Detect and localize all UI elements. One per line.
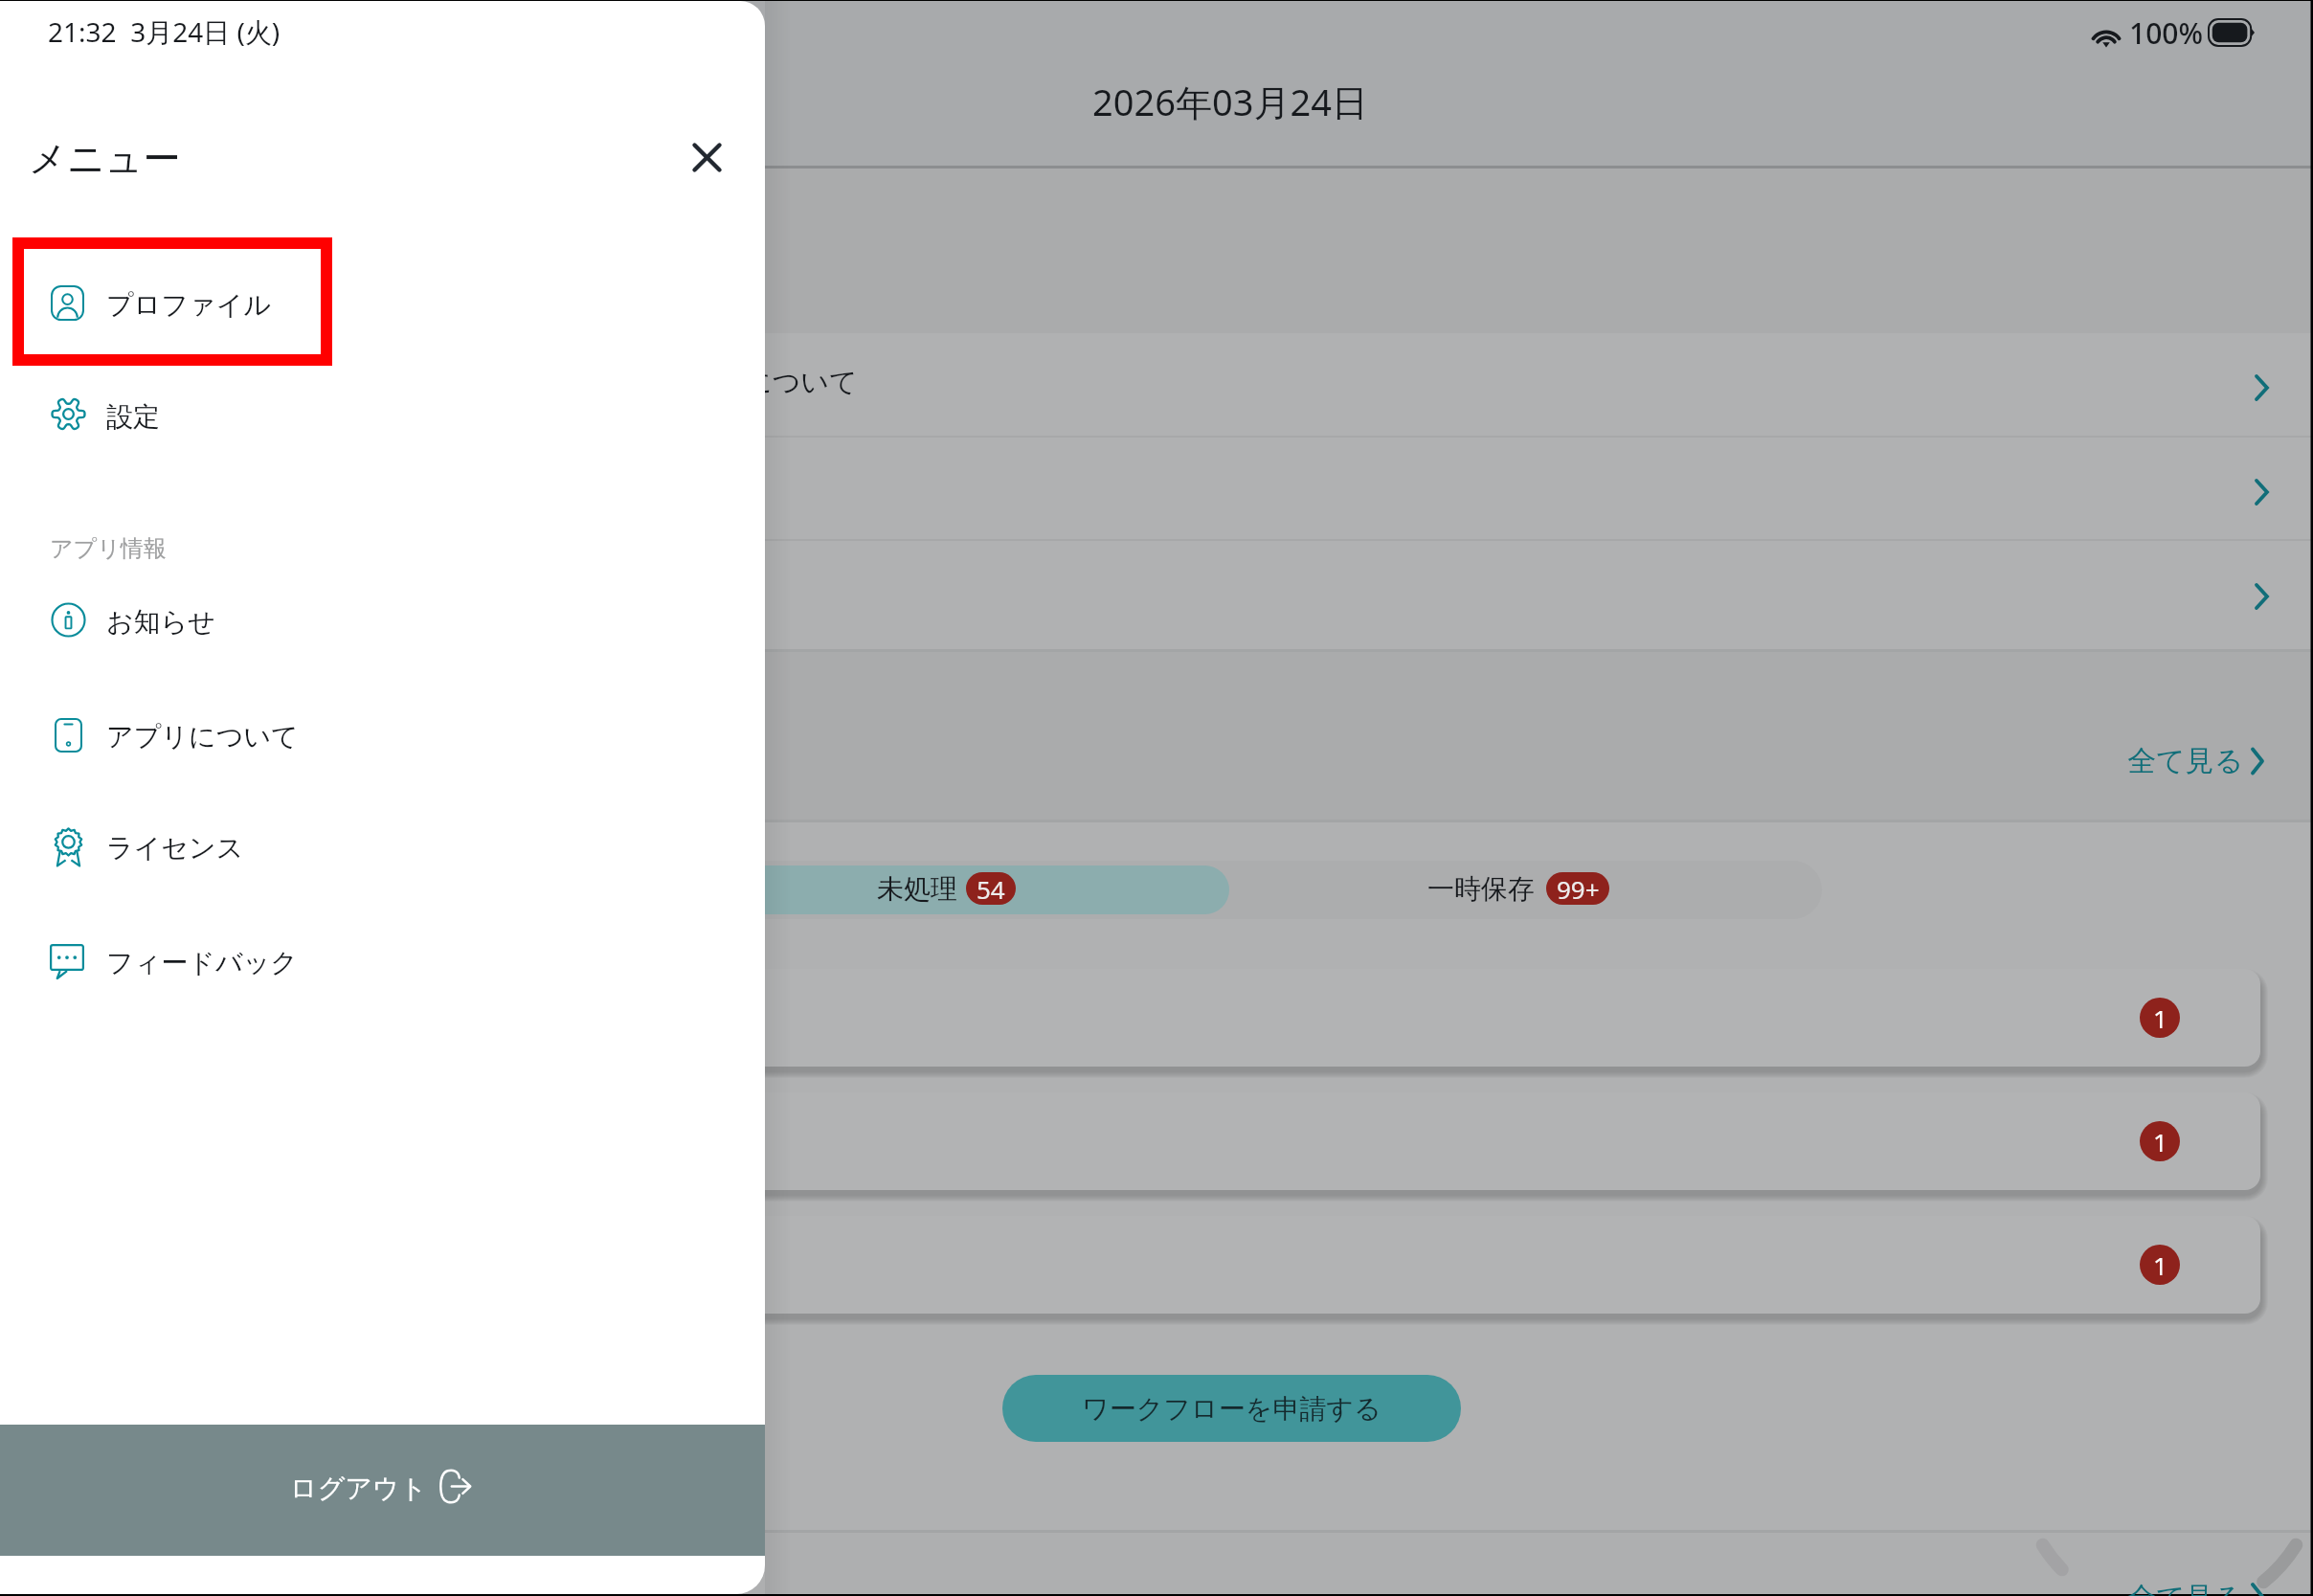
staticText: 99+ xyxy=(1557,872,1600,905)
button[interactable]: アプリについて xyxy=(0,679,765,790)
button[interactable]: 設定 xyxy=(0,359,765,470)
staticText: 設定 xyxy=(106,400,160,434)
staticText: お知らせ xyxy=(106,605,215,639)
staticText: 全て見る xyxy=(2127,1580,2244,1596)
staticText: 2026年03月24日 xyxy=(1092,77,1368,126)
staticText: 一時保存 xyxy=(1427,872,1535,906)
staticText: ログアウト xyxy=(290,1472,428,1505)
button[interactable]: ライセンス xyxy=(0,790,765,901)
staticText: 未処理 xyxy=(877,872,957,906)
button[interactable]: 全て見る xyxy=(2106,726,2271,797)
button[interactable]: プロファイル xyxy=(0,247,765,358)
button[interactable]: Close menu xyxy=(677,127,737,188)
button[interactable]: お知らせ xyxy=(0,564,765,675)
staticText: ライセンス xyxy=(106,831,244,865)
button[interactable]: ログアウト xyxy=(0,1425,765,1556)
button[interactable]: フィードバック xyxy=(0,905,765,1016)
staticText: アプリについて xyxy=(106,720,299,753)
staticText: 21:32 3月24日 (火) xyxy=(48,13,281,50)
staticText: 1 xyxy=(2153,1248,2167,1282)
button[interactable]: 全て見る xyxy=(2106,1562,2271,1596)
staticText: ワークフローを申請する xyxy=(1082,1392,1381,1426)
staticText: 1 xyxy=(2153,1001,2167,1035)
staticText: 全て見る xyxy=(2127,743,2244,779)
staticText: 1 xyxy=(2153,1125,2167,1158)
staticText: 54 xyxy=(977,872,1005,905)
staticText: フィードバック xyxy=(106,946,298,979)
staticText: 100% xyxy=(2129,13,2204,53)
staticText: アプリ情報 xyxy=(50,534,167,563)
staticText: プロファイル xyxy=(106,288,271,322)
button[interactable]: ワークフローを申請する xyxy=(1002,1375,1461,1442)
staticText: について xyxy=(744,365,858,400)
staticText: メニュー xyxy=(29,135,181,182)
